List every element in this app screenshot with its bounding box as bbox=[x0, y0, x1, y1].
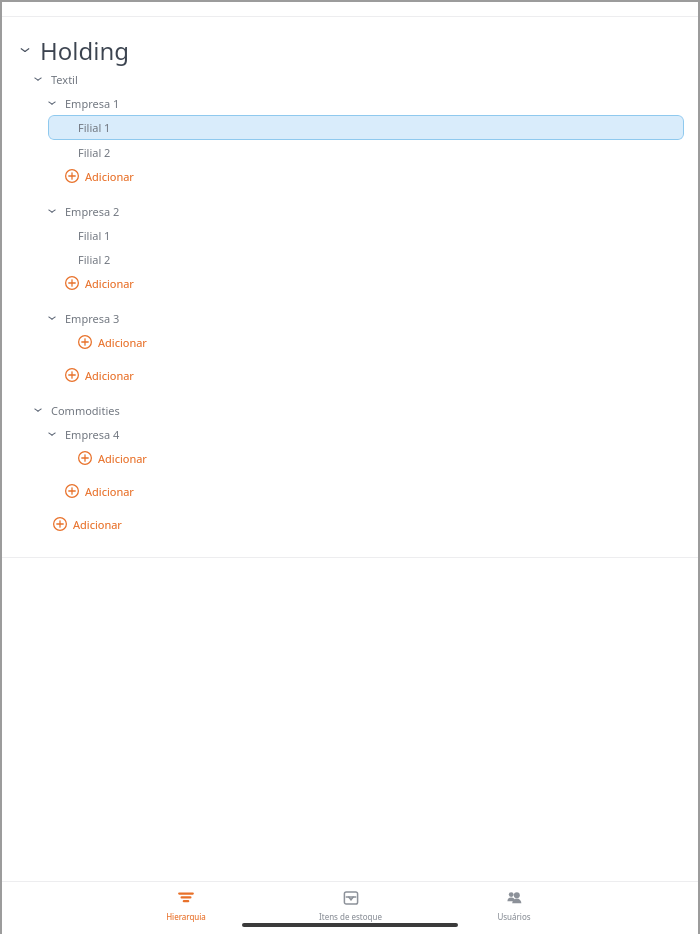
staticText: Usuários bbox=[497, 911, 531, 922]
staticText: Empresa 3 bbox=[65, 311, 120, 326]
staticText: Holding bbox=[40, 34, 130, 66]
button[interactable]: Adicionar bbox=[0, 363, 700, 387]
button[interactable]: Textil bbox=[0, 67, 700, 91]
button[interactable]: Hierarquia bbox=[104, 886, 268, 923]
button[interactable]: Filial 1 bbox=[0, 223, 700, 247]
staticText: Adicionar bbox=[85, 368, 134, 383]
button[interactable]: Adicionar bbox=[0, 271, 700, 295]
button[interactable]: Empresa 3 bbox=[0, 306, 700, 330]
staticText: Filial 1 bbox=[78, 120, 111, 135]
staticText: Adicionar bbox=[98, 451, 147, 466]
staticText: Empresa 1 bbox=[65, 96, 120, 111]
button[interactable]: Filial 2 bbox=[0, 140, 700, 164]
staticText: Empresa 2 bbox=[65, 204, 120, 219]
button[interactable]: Adicionar bbox=[0, 446, 700, 470]
staticText: Adicionar bbox=[98, 335, 147, 350]
staticText: Adicionar bbox=[85, 169, 134, 184]
button[interactable]: Adicionar bbox=[0, 512, 700, 536]
staticText: Commodities bbox=[51, 403, 120, 418]
staticText: Filial 2 bbox=[78, 252, 111, 267]
button[interactable]: Adicionar bbox=[0, 330, 700, 354]
button[interactable]: Empresa 2 bbox=[0, 199, 700, 223]
staticText: Adicionar bbox=[85, 484, 134, 499]
button[interactable]: Filial 2 bbox=[0, 247, 700, 271]
staticText: Empresa 4 bbox=[65, 427, 120, 442]
staticText: Filial 2 bbox=[78, 145, 111, 160]
button[interactable]: Usuários bbox=[432, 886, 596, 923]
staticText: Textil bbox=[51, 72, 78, 87]
button[interactable]: Filial 1 bbox=[48, 115, 684, 140]
button[interactable]: Empresa 4 bbox=[0, 422, 700, 446]
staticText: Filial 1 bbox=[78, 228, 111, 243]
button[interactable]: Empresa 1 bbox=[0, 91, 700, 115]
staticText: Hierarquia bbox=[166, 911, 206, 922]
button[interactable]: Adicionar bbox=[0, 479, 700, 503]
button[interactable]: Adicionar bbox=[0, 164, 700, 188]
staticText: Adicionar bbox=[85, 276, 134, 291]
button[interactable]: Holding bbox=[0, 34, 700, 66]
staticText: Itens de estoque bbox=[319, 911, 382, 922]
button[interactable]: Itens de estoque bbox=[268, 886, 432, 923]
button[interactable]: Commodities bbox=[0, 398, 700, 422]
staticText: Adicionar bbox=[73, 517, 122, 532]
